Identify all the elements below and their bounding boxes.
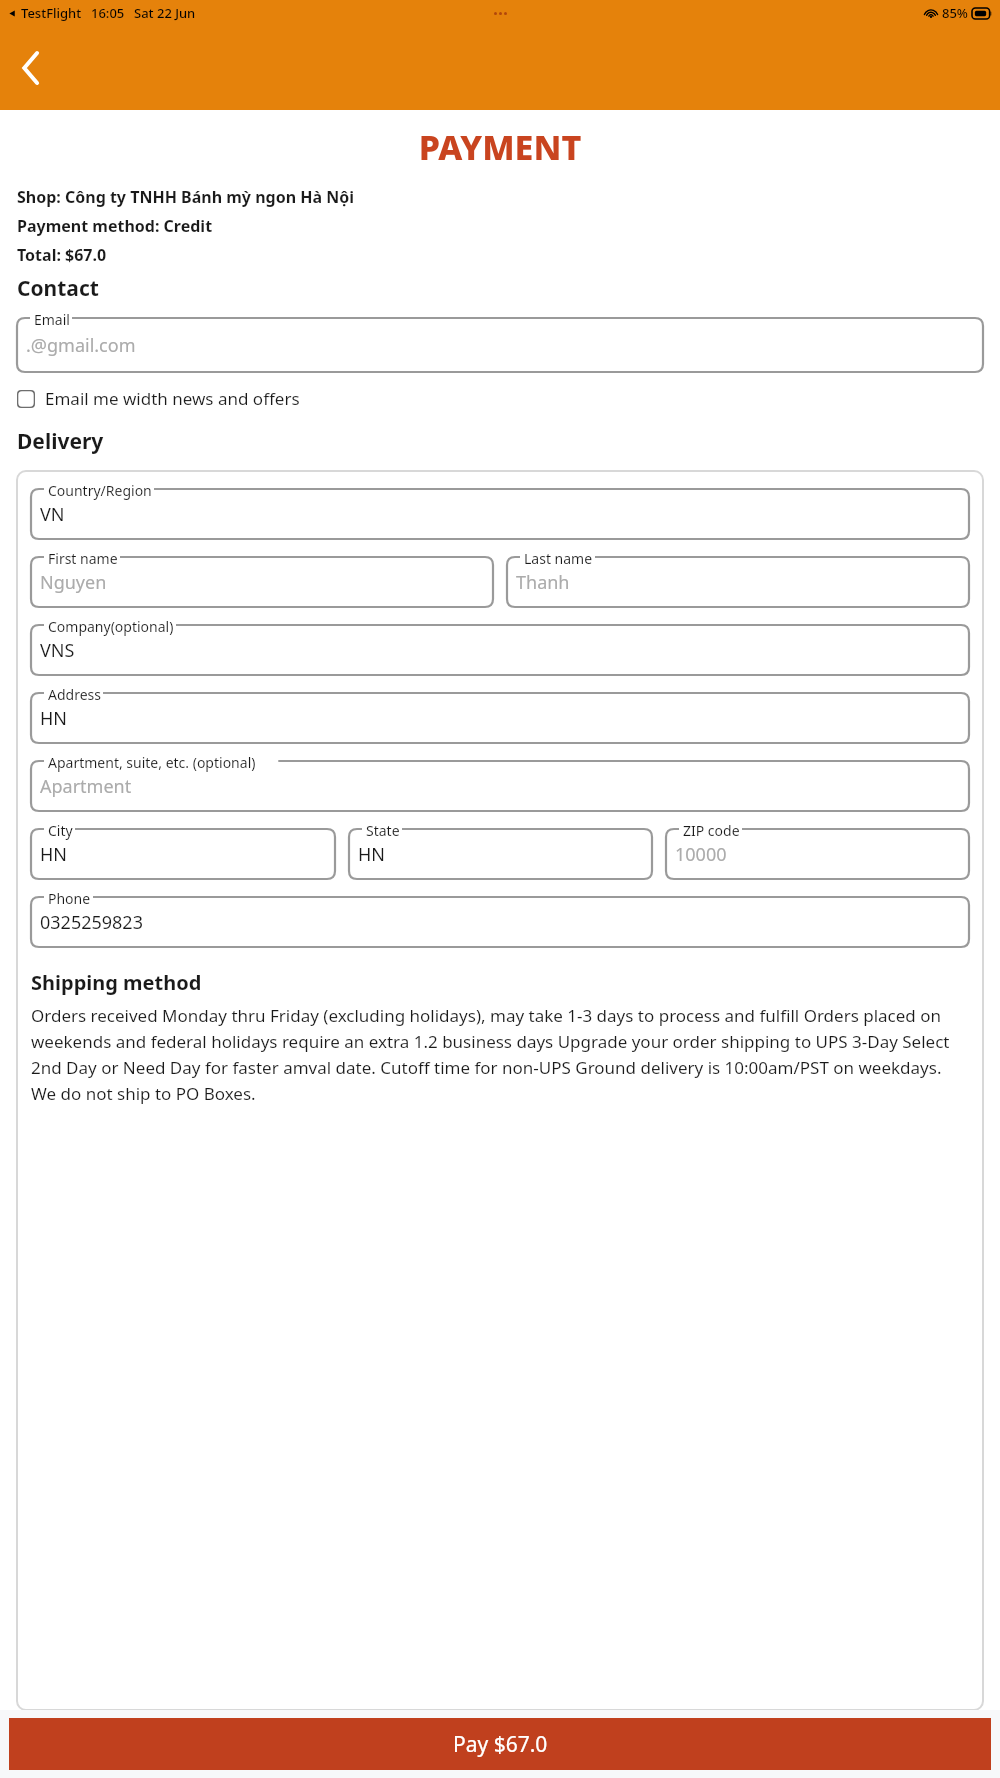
- staticText: Company(optional): [48, 617, 174, 636]
- staticText: Contact: [17, 274, 99, 303]
- staticText: Shipping method: [31, 969, 202, 996]
- staticText: ZIP code: [683, 821, 740, 840]
- button[interactable]: HN: [349, 829, 652, 879]
- button[interactable]: 10000: [666, 829, 969, 879]
- staticText: 10000: [675, 842, 727, 867]
- staticText: Shop: Công ty TNHH Bánh mỳ ngon Hà Nội: [17, 186, 354, 208]
- staticText: VN: [40, 502, 65, 527]
- button[interactable]: VNS: [31, 625, 969, 675]
- staticText: Nguyen: [40, 570, 107, 595]
- staticText: TestFlight: [21, 4, 82, 22]
- staticText: Apartment: [40, 774, 132, 799]
- staticText: HN: [40, 706, 68, 731]
- staticText: First name: [48, 549, 118, 568]
- staticText: Country/Region: [48, 481, 152, 500]
- staticText: VNS: [40, 638, 75, 663]
- button[interactable]: VN: [31, 489, 969, 539]
- staticText: Apartment, suite, etc. (optional): [48, 753, 256, 772]
- staticText: 85%: [942, 4, 968, 22]
- staticText: City: [48, 821, 73, 840]
- staticText: Payment method: Credit: [17, 215, 213, 237]
- staticText: .@gmail.com: [26, 333, 136, 358]
- button[interactable]: Pay $67.0: [9, 1718, 991, 1770]
- staticText: Address: [48, 685, 101, 704]
- button[interactable]: HN: [31, 829, 335, 879]
- staticText: Email me width news and offers: [45, 387, 300, 410]
- staticText: 0325259823: [40, 910, 143, 935]
- staticText: HN: [40, 842, 68, 867]
- staticText: Email: [34, 310, 70, 329]
- staticText: Pay $67.0: [453, 1730, 548, 1759]
- staticText: Phone: [48, 889, 91, 908]
- staticText: Delivery: [17, 427, 104, 456]
- staticText: Last name: [524, 549, 593, 568]
- button[interactable]: 0325259823: [31, 897, 969, 947]
- button[interactable]: Thanh: [507, 557, 969, 607]
- staticText: Sat 22 Jun: [134, 4, 196, 22]
- button[interactable]: HN: [31, 693, 969, 743]
- button[interactable]: Apartment: [31, 761, 969, 811]
- staticText: Total: $67.0: [17, 244, 107, 266]
- staticText: HN: [358, 842, 386, 867]
- staticText: Thanh: [516, 570, 570, 595]
- button[interactable]: Nguyen: [31, 557, 493, 607]
- button[interactable]: Back: [8, 45, 54, 91]
- staticText: State: [366, 821, 400, 840]
- button[interactable]: .@gmail.com: [17, 318, 983, 372]
- staticText: PAYMENT: [0, 124, 1000, 170]
- button[interactable]: Email me width news and offers: [17, 387, 983, 410]
- staticText: Orders received Monday thru Friday (excl…: [31, 1004, 969, 1105]
- staticText: 16:05: [91, 4, 125, 22]
